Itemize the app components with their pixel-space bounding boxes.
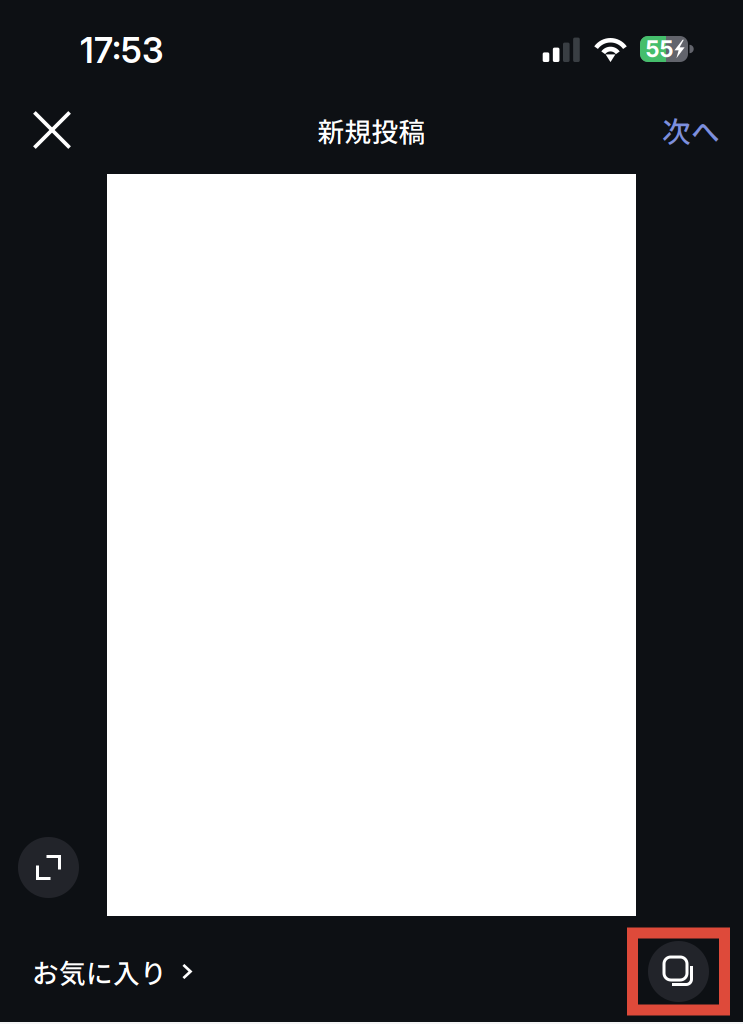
button[interactable]: Close: [16, 93, 88, 167]
staticText: 次へ: [662, 109, 720, 151]
staticText: 55: [645, 35, 673, 63]
button[interactable]: お気に入り: [30, 932, 194, 1011]
staticText: 17:53: [80, 29, 164, 71]
button[interactable]: Select multiple: [627, 927, 730, 1015]
button[interactable]: Expand: [18, 837, 79, 898]
staticText: 新規投稿: [317, 111, 425, 149]
staticText: お気に入り: [32, 952, 167, 991]
button[interactable]: 次へ: [654, 93, 728, 167]
